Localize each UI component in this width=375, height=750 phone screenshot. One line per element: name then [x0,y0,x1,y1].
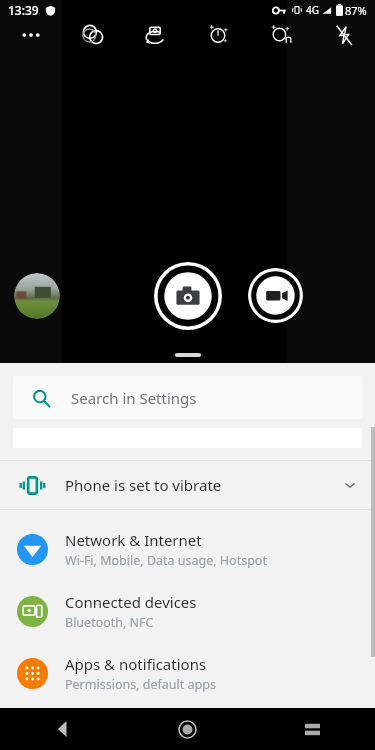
staticText: Permissions, default apps [65,676,216,693]
button[interactable]: More options [0,20,62,50]
button[interactable]: Recent apps [250,708,375,750]
button[interactable]: Flash off [312,20,375,50]
button[interactable]: Apps & notifications [0,642,375,704]
button[interactable]: Back [0,708,125,750]
button[interactable]: Network & Internet [0,518,375,580]
staticText: 4G [306,3,319,17]
button[interactable]: Last photo [14,273,60,319]
staticText: Connected devices [65,592,197,612]
button[interactable]: Switch camera [124,20,186,50]
button[interactable]: Connected devices [0,580,375,642]
staticText: Apps & notifications [65,654,207,674]
staticText: Network & Internet [65,530,202,550]
button[interactable]: Phone is set to vibrate [0,461,375,509]
staticText: Bluetooth, NFC [65,614,154,631]
staticText: Phone is set to vibrate [65,475,222,495]
button[interactable]: Record video [248,268,303,323]
button[interactable]: Lens blur [62,20,124,50]
staticText: Wi-Fi, Mobile, Data usage, Hotspot [65,552,267,569]
button[interactable]: HDR [249,20,312,50]
button[interactable]: Timer [186,20,249,50]
staticText: Search in Settings [71,388,197,408]
button[interactable]: Take photo [154,262,222,330]
button[interactable]: Home [125,708,250,750]
staticText: 87% [345,3,367,18]
staticText: 13:39 [8,2,39,18]
button[interactable]: Search in Settings [13,376,362,419]
